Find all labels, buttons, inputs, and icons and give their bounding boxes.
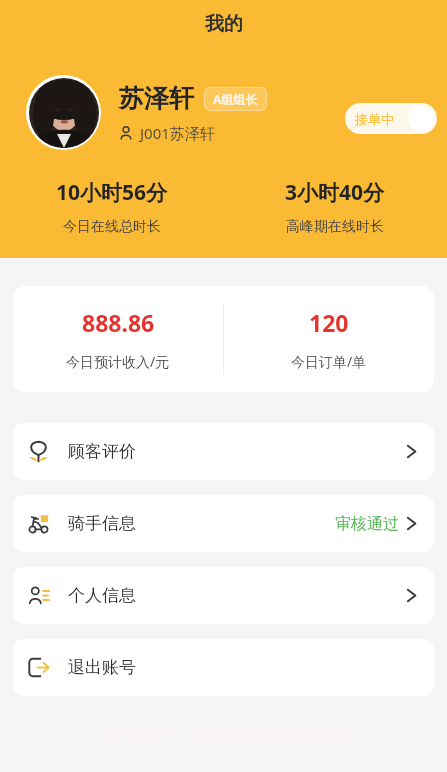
staticText: 审核通过 xyxy=(335,514,399,534)
button[interactable]: 接单中 开关 xyxy=(345,103,437,134)
button[interactable]: 个人信息 xyxy=(13,567,434,624)
staticText: 今日订单/单 xyxy=(291,352,367,371)
staticText: 今日在线总时长 xyxy=(63,218,161,236)
staticText: 苏泽轩 xyxy=(119,83,194,114)
staticText: 888.86 xyxy=(82,307,155,338)
staticText: 退出账号 xyxy=(68,657,136,678)
staticText: 3小时40分 xyxy=(285,178,385,207)
button[interactable]: 退出账号 xyxy=(13,639,434,696)
staticText: 接单中 xyxy=(355,111,394,127)
staticText: 高峰期在线时长 xyxy=(286,218,384,236)
staticText: 顾客评价 xyxy=(68,441,136,462)
button[interactable]: 顾客评价 xyxy=(13,423,434,480)
staticText: 个人信息 xyxy=(68,585,136,606)
staticText: A组组长 xyxy=(213,91,258,107)
staticText: 120 xyxy=(309,307,349,338)
staticText: 骑手信息 xyxy=(68,513,136,534)
staticText: 10小时56分 xyxy=(56,178,168,207)
staticText: 今日预计收入/元 xyxy=(66,352,170,371)
button[interactable]: 骑手信息 xyxy=(13,495,434,552)
staticText: J001苏泽轩 xyxy=(140,123,215,143)
staticText: 我的 xyxy=(205,12,243,36)
